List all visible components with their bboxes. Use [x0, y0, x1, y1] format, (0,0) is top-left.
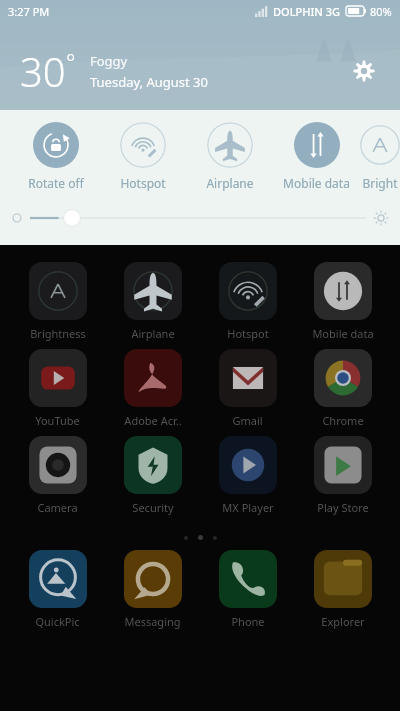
staticText: Foggy: [90, 52, 128, 70]
button[interactable]: Airplane: [186, 122, 273, 191]
button[interactable]: YouTube: [10, 349, 105, 428]
button[interactable]: Settings: [344, 51, 384, 91]
button[interactable]: Brightness: [360, 122, 400, 191]
staticText: Brightness: [360, 175, 400, 191]
staticText: Explorer: [321, 614, 365, 629]
staticText: 30: [20, 44, 66, 98]
button[interactable]: Messaging: [105, 550, 200, 629]
staticText: °: [66, 46, 76, 76]
button[interactable]: Gmail: [200, 349, 295, 428]
button[interactable]: Hotspot: [200, 262, 295, 341]
button[interactable]: [12, 205, 388, 231]
staticText: YouTube: [35, 413, 80, 428]
staticText: Gmail: [232, 413, 263, 428]
button[interactable]: Mobile data: [295, 262, 390, 341]
staticText: Mobile data: [312, 326, 374, 341]
staticText: Airplane: [206, 175, 254, 191]
button[interactable]: Rotate off: [12, 122, 99, 191]
staticText: Hotspot: [120, 175, 166, 191]
staticText: Adobe Acr..: [124, 413, 182, 428]
button[interactable]: Brightness: [10, 262, 105, 341]
staticText: MX Player: [222, 500, 274, 515]
staticText: Mobile data: [283, 175, 350, 191]
button[interactable]: Play Store: [295, 436, 390, 515]
staticText: DOLPHIN 3G: [273, 4, 341, 19]
staticText: 80%: [370, 4, 392, 19]
button[interactable]: Chrome: [295, 349, 390, 428]
button[interactable]: Mobile data: [273, 122, 360, 191]
staticText: Messaging: [124, 614, 181, 629]
staticText: Hotspot: [227, 326, 269, 341]
button[interactable]: Adobe Acr..: [105, 349, 200, 428]
button[interactable]: QuickPic: [10, 550, 105, 629]
staticText: Camera: [37, 500, 78, 515]
button[interactable]: MX Player: [200, 436, 295, 515]
staticText: Rotate off: [28, 175, 84, 191]
staticText: 3:27 PM: [8, 4, 50, 19]
button[interactable]: Camera: [10, 436, 105, 515]
staticText: QuickPic: [35, 614, 80, 629]
button[interactable]: Explorer: [295, 550, 390, 629]
button[interactable]: Security: [105, 436, 200, 515]
staticText: Play Store: [317, 500, 369, 515]
button[interactable]: Phone: [200, 550, 295, 629]
staticText: Brightness: [30, 326, 86, 341]
staticText: Airplane: [131, 326, 175, 341]
button[interactable]: Airplane: [105, 262, 200, 341]
staticText: Phone: [231, 614, 265, 629]
staticText: Chrome: [322, 413, 364, 428]
button[interactable]: Hotspot: [99, 122, 186, 191]
staticText: Tuesday, August 30: [90, 73, 208, 91]
staticText: Security: [132, 500, 174, 515]
